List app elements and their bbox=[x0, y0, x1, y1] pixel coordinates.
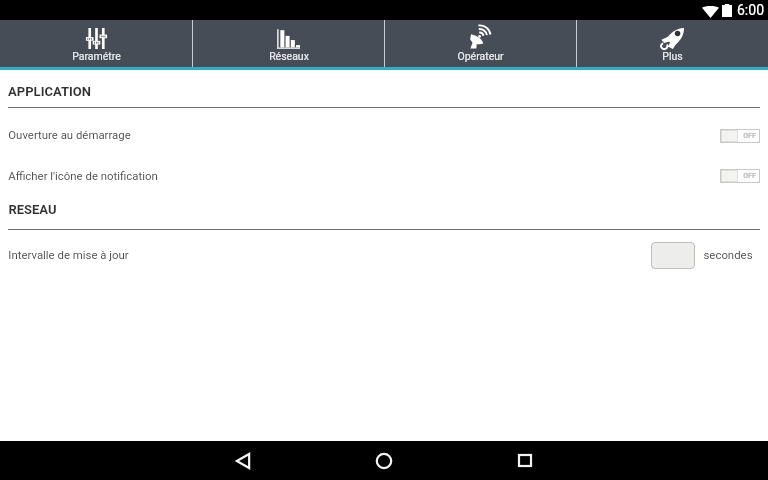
button[interactable]: Recent apps bbox=[504, 441, 546, 480]
staticText: secondes bbox=[703, 248, 753, 261]
button[interactable]: Toggle bbox=[720, 169, 760, 183]
button[interactable]: Update interval bbox=[651, 242, 695, 269]
staticText: RESEAU bbox=[8, 202, 57, 217]
button[interactable]: Toggle bbox=[720, 129, 760, 143]
staticText: Plus bbox=[662, 50, 683, 62]
button[interactable]: Afficher l'icône de notification bbox=[0, 163, 768, 187]
staticText: Opérateur bbox=[457, 50, 504, 62]
staticText: Intervalle de mise à jour bbox=[8, 248, 129, 261]
button[interactable]: Réseaux bbox=[193, 20, 384, 67]
button[interactable]: Home bbox=[363, 441, 405, 480]
button[interactable]: Back bbox=[222, 441, 264, 480]
button[interactable]: Ouverture au démarrage bbox=[0, 122, 768, 146]
staticText: Afficher l'icône de notification bbox=[8, 169, 158, 182]
staticText: OFF bbox=[743, 132, 756, 140]
staticText: Ouverture au démarrage bbox=[8, 128, 131, 141]
staticText: 6:00 bbox=[737, 2, 764, 18]
button[interactable]: Plus bbox=[577, 20, 768, 67]
staticText: Paramétre bbox=[72, 50, 121, 62]
staticText: Réseaux bbox=[269, 50, 309, 62]
staticText: OFF bbox=[743, 172, 756, 180]
button[interactable]: Paramétre bbox=[0, 20, 192, 67]
staticText: APPLICATION bbox=[8, 84, 91, 99]
button[interactable]: Opérateur bbox=[385, 20, 576, 67]
